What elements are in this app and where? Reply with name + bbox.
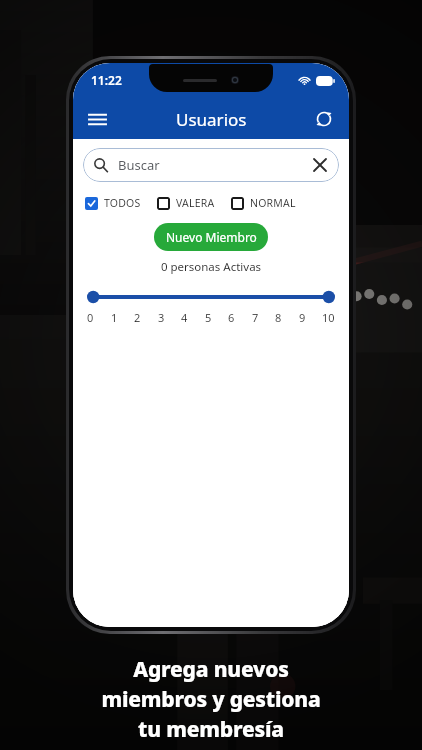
staticText: tu membresía bbox=[138, 715, 284, 744]
staticText: NORMAL bbox=[250, 196, 296, 210]
button[interactable]: Menu bbox=[79, 101, 115, 137]
staticText: miembros y gestiona bbox=[101, 685, 321, 714]
staticText: Usuarios bbox=[176, 108, 247, 131]
staticText: VALERA bbox=[176, 196, 215, 210]
staticText: 0 bbox=[87, 310, 94, 325]
button[interactable]: NORMAL bbox=[231, 196, 296, 210]
staticText: Buscar bbox=[118, 156, 160, 174]
staticText: 3 bbox=[158, 310, 165, 325]
staticText: 6 bbox=[228, 310, 235, 325]
button[interactable]: Buscar bbox=[83, 148, 339, 182]
staticText: 5 bbox=[205, 310, 212, 325]
button[interactable]: Sync bbox=[307, 102, 341, 136]
staticText: 0 personas Activas bbox=[73, 259, 349, 275]
staticText: 1 bbox=[111, 310, 118, 325]
button[interactable]: TODOS bbox=[85, 196, 141, 210]
button[interactable]: Nuevo Miembro bbox=[154, 223, 268, 251]
staticText: 11:22 bbox=[91, 72, 122, 88]
staticText: 10 bbox=[322, 310, 335, 325]
staticText: Agrega nuevos bbox=[133, 655, 289, 684]
staticText: 8 bbox=[275, 310, 282, 325]
staticText: Nuevo Miembro bbox=[166, 229, 257, 245]
staticText: TODOS bbox=[104, 196, 141, 210]
button[interactable] bbox=[87, 288, 335, 306]
staticText: 7 bbox=[252, 310, 259, 325]
staticText: 4 bbox=[181, 310, 188, 325]
button[interactable]: Clear search bbox=[307, 152, 333, 178]
staticText: 2 bbox=[134, 310, 141, 325]
staticText: 9 bbox=[299, 310, 306, 325]
button[interactable]: VALERA bbox=[157, 196, 215, 210]
